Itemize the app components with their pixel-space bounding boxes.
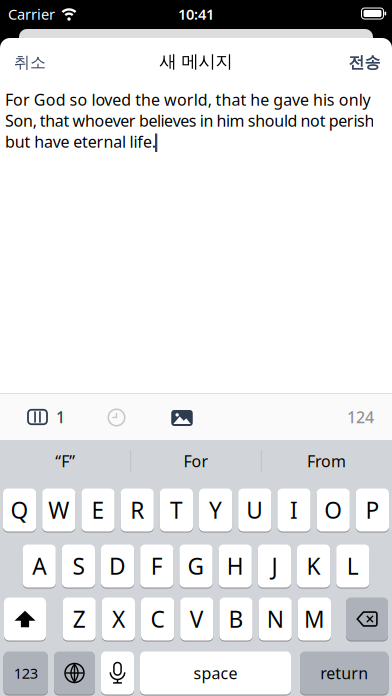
staticText: X (112, 604, 125, 634)
button[interactable]: Next keyboard (54, 651, 95, 694)
button[interactable]: return (300, 651, 388, 694)
button[interactable]: G (179, 544, 213, 587)
button[interactable]: Delete (346, 597, 388, 640)
staticText: B (228, 604, 243, 634)
staticText: 취소 (14, 53, 46, 72)
button[interactable]: S (62, 544, 95, 587)
staticText: 새 메시지 (159, 51, 232, 72)
button[interactable]: B (219, 597, 253, 640)
staticText: V (190, 604, 204, 634)
button[interactable]: R (121, 488, 154, 531)
staticText: Son, that whoever believes in him should… (5, 110, 374, 131)
button[interactable]: I (277, 488, 311, 531)
staticText: 10:41 (178, 4, 214, 24)
staticText: W (48, 495, 69, 525)
button[interactable]: X (102, 597, 135, 640)
staticText: but have eternal life. (5, 131, 156, 152)
staticText: return (320, 662, 368, 684)
button[interactable]: Attach image (171, 410, 193, 426)
button[interactable]: W (42, 488, 75, 531)
staticText: “F” (55, 450, 75, 472)
staticText: Q (11, 495, 29, 525)
button[interactable]: C (141, 597, 174, 640)
button[interactable]: Schedule (108, 409, 125, 426)
staticText: Y (209, 495, 222, 525)
button[interactable]: L (336, 544, 369, 587)
staticText: Z (73, 604, 86, 634)
button[interactable]: 취소 (14, 49, 104, 75)
button[interactable]: “F” (0, 440, 130, 482)
button[interactable]: For (131, 440, 261, 482)
staticText: K (307, 551, 321, 581)
staticText: E (91, 495, 104, 525)
staticText: S (72, 551, 84, 581)
staticText: 124 (347, 406, 374, 428)
button[interactable]: O (317, 488, 350, 531)
button[interactable]: From (261, 440, 392, 482)
staticText: For God so loved the world, that he gave… (5, 89, 371, 110)
button[interactable]: M (298, 597, 331, 640)
button[interactable]: P (356, 488, 389, 531)
button[interactable]: D (101, 544, 134, 587)
button[interactable]: E (81, 488, 115, 531)
button[interactable]: Dictate (101, 651, 134, 694)
button[interactable]: T (160, 488, 193, 531)
button[interactable]: A (23, 544, 56, 587)
button[interactable]: Numbers (3, 651, 48, 694)
staticText: P (365, 495, 379, 525)
staticText: I (290, 495, 298, 525)
staticText: U (246, 495, 263, 525)
button[interactable]: space (140, 651, 291, 694)
staticText: A (32, 551, 46, 581)
staticText: Carrier (8, 4, 55, 24)
staticText: N (267, 604, 284, 634)
staticText: R (130, 495, 144, 525)
staticText: M (304, 604, 325, 634)
staticText: For (183, 450, 208, 472)
staticText: L (347, 551, 359, 581)
button[interactable]: K (297, 544, 330, 587)
staticText: D (109, 551, 126, 581)
staticText: From (307, 450, 346, 472)
button[interactable]: Y (199, 488, 232, 531)
staticText: F (151, 551, 163, 581)
staticText: O (324, 495, 342, 525)
staticText: space (193, 662, 237, 684)
button[interactable]: F (140, 544, 173, 587)
staticText: H (227, 551, 244, 581)
staticText: 123 (14, 663, 38, 683)
staticText: G (187, 551, 204, 581)
button[interactable]: Pages (28, 405, 103, 429)
button[interactable]: Z (63, 597, 96, 640)
button[interactable]: J (258, 544, 291, 587)
button[interactable]: Q (3, 488, 36, 531)
staticText: C (151, 604, 165, 634)
staticText: J (271, 551, 277, 581)
button[interactable]: N (259, 597, 292, 640)
button[interactable]: Shift (4, 597, 46, 640)
staticText: 1 (56, 406, 65, 428)
staticText: T (170, 495, 183, 525)
staticText: 전송 (348, 53, 380, 72)
button[interactable]: 전송 (290, 49, 380, 75)
button[interactable]: V (180, 597, 213, 640)
button[interactable]: H (219, 544, 252, 587)
button[interactable]: U (238, 488, 271, 531)
